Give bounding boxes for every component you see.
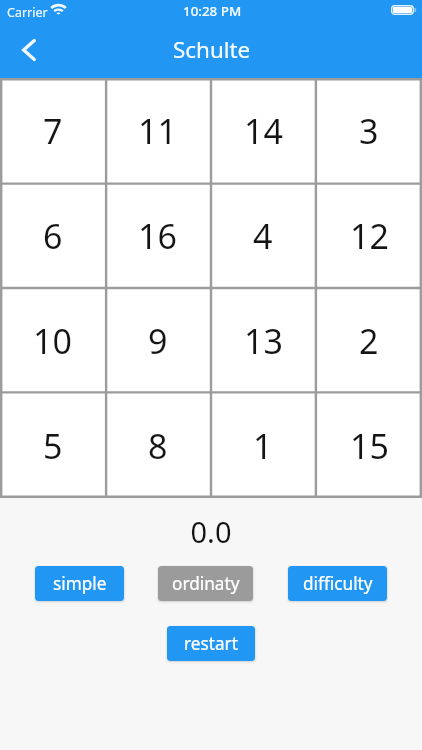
staticText: 14 [244,108,283,154]
staticText: 2 [359,318,379,364]
button[interactable]: 2 [316,288,422,393]
button[interactable]: 3 [316,78,422,183]
button[interactable]: simple [35,566,124,601]
button[interactable]: Back [5,26,53,74]
button[interactable]: 1 [210,393,316,498]
staticText: 8 [148,423,168,469]
staticText: simple [53,572,107,595]
staticText: 0.0 [0,512,422,551]
button[interactable]: 16 [105,183,210,288]
staticText: 15 [350,423,389,469]
button[interactable]: 9 [105,288,210,393]
button[interactable]: 7 [0,78,105,183]
staticText: 6 [43,213,63,259]
staticText: 12 [350,213,389,259]
button[interactable]: 14 [210,78,316,183]
staticText: 10 [33,318,72,364]
staticText: 5 [43,423,63,469]
button[interactable]: 6 [0,183,105,288]
button[interactable]: 8 [105,393,210,498]
button[interactable]: restart [167,626,255,661]
staticText: ordinaty [172,572,240,595]
button[interactable]: difficulty [288,566,387,601]
button[interactable]: 11 [105,78,210,183]
staticText: restart [184,632,238,655]
staticText: 7 [43,108,63,154]
staticText: 11 [138,108,177,154]
staticText: 9 [148,318,168,364]
staticText: 3 [359,108,379,154]
button[interactable]: 4 [210,183,316,288]
button[interactable]: ordinaty [158,566,253,601]
button[interactable]: 15 [316,393,422,498]
staticText: 13 [244,318,283,364]
button[interactable]: 10 [0,288,105,393]
staticText: 1 [253,423,273,469]
button[interactable]: 5 [0,393,105,498]
staticText: 10:28 PM [183,2,242,20]
button[interactable]: 12 [316,183,422,288]
staticText: Schulte [173,34,251,65]
staticText: difficulty [303,572,373,595]
staticText: 16 [138,213,177,259]
button[interactable]: 13 [210,288,316,393]
staticText: 4 [253,213,273,259]
staticText: Carrier [7,4,48,21]
